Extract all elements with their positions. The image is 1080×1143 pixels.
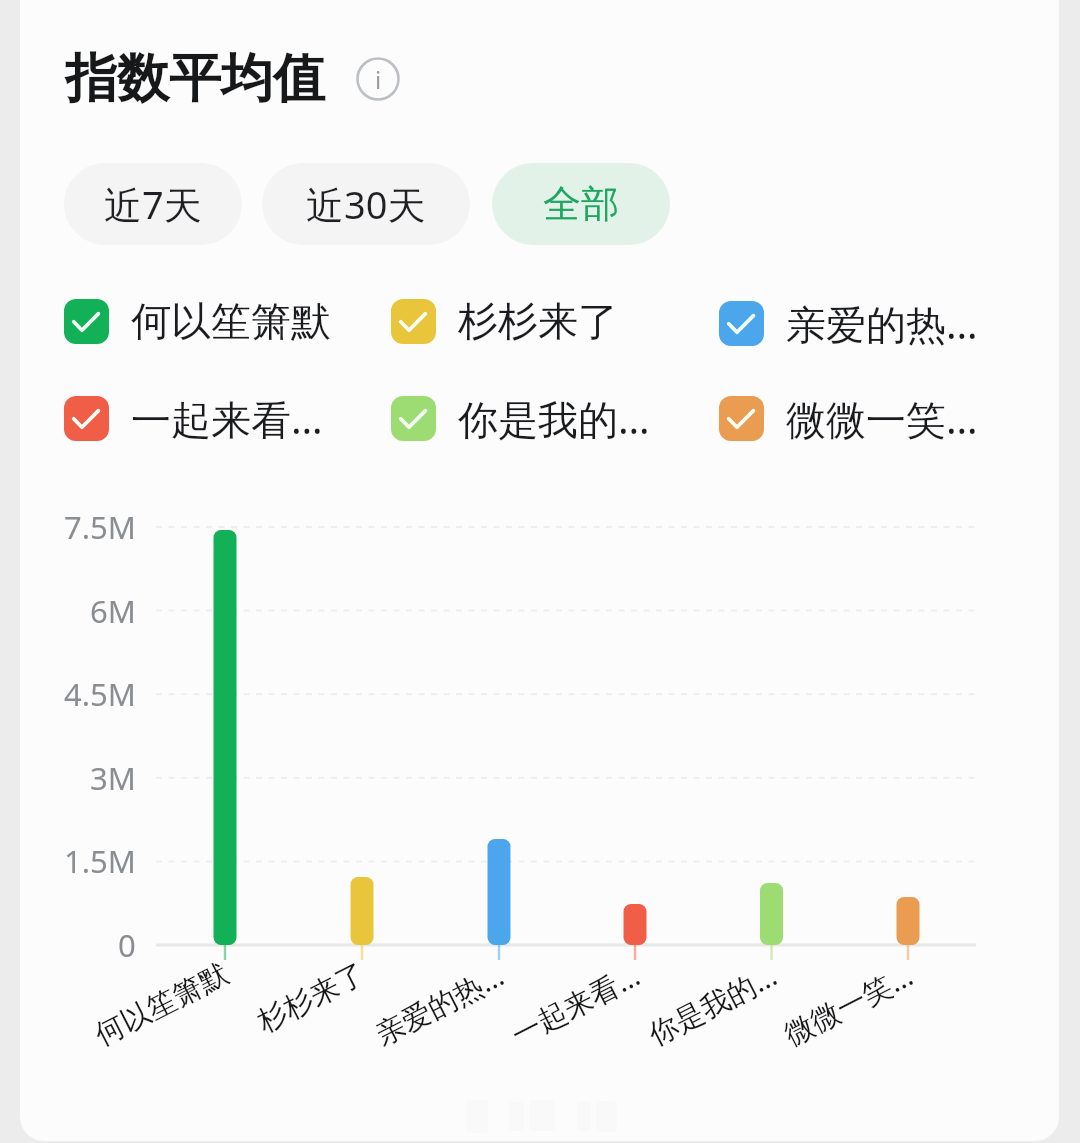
staticText: 微微一笑… xyxy=(634,955,919,1127)
staticText: 近30天 xyxy=(306,178,426,230)
staticText: 3M xyxy=(90,757,136,799)
staticText: 杉杉来了 xyxy=(88,955,372,1124)
staticText: 你是我的… xyxy=(498,955,783,1127)
button[interactable]: 近7天 xyxy=(64,163,242,245)
button[interactable]: 一起来看… xyxy=(64,391,323,446)
staticText: 一起来看… xyxy=(361,955,646,1127)
button[interactable]: About the average index xyxy=(356,57,400,101)
staticText: 全部 xyxy=(543,180,619,228)
staticText: 亲爱的热… xyxy=(786,296,978,351)
staticText: 你是我的… xyxy=(458,391,650,446)
staticText: 亲爱的热… xyxy=(225,955,510,1127)
staticText: 一起来看… xyxy=(131,391,323,446)
button[interactable]: 指数平均值 xyxy=(65,46,400,112)
button[interactable]: 亲爱的热… xyxy=(719,296,978,351)
staticText: 杉杉来了 xyxy=(458,296,618,346)
staticText: i xyxy=(375,63,382,96)
staticText: 指数平均值 xyxy=(65,46,325,112)
staticText: 何以笙箫默 xyxy=(0,955,235,1124)
button[interactable]: 全部 xyxy=(492,163,670,245)
button[interactable]: 你是我的… xyxy=(391,391,650,446)
staticText: 近7天 xyxy=(104,178,202,230)
staticText: 何以笙箫默 xyxy=(131,296,331,346)
button[interactable]: 何以笙箫默 xyxy=(64,296,331,346)
button[interactable]: 微微一笑… xyxy=(719,391,978,446)
staticText: 4.5M xyxy=(64,673,136,715)
staticText: 7.5M xyxy=(64,506,136,548)
staticText: 1.5M xyxy=(64,840,136,882)
button[interactable]: 杉杉来了 xyxy=(391,296,618,346)
staticText: 0 xyxy=(118,924,136,966)
staticText: 6M xyxy=(90,590,136,632)
button[interactable]: 近30天 xyxy=(262,163,470,245)
staticText: 微微一笑… xyxy=(786,391,978,446)
